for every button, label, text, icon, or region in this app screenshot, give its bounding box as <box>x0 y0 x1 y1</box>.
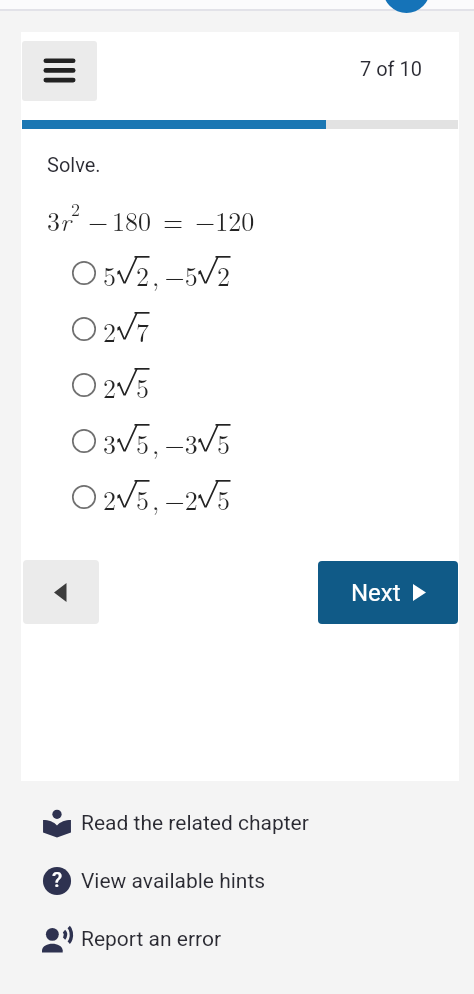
button[interactable]: 3 <box>69 419 369 463</box>
staticText: View available hints <box>81 869 266 894</box>
staticText: 3 <box>47 202 61 239</box>
staticText: 5 <box>217 425 231 462</box>
staticText: , −2 <box>152 481 198 518</box>
staticText: Report an error <box>81 927 222 952</box>
staticText: −120 <box>195 202 255 239</box>
staticText: Solve. <box>47 153 101 176</box>
staticText: , −3 <box>152 425 198 462</box>
staticText: − <box>88 202 109 239</box>
staticText: 5 <box>103 257 117 294</box>
staticText: 5 <box>136 369 150 406</box>
staticText: 2 <box>103 481 117 518</box>
button[interactable]: Read the related chapter <box>0 797 474 849</box>
staticText: r <box>60 202 71 239</box>
staticText: 5 <box>136 481 150 518</box>
button[interactable]: 5 <box>69 251 369 295</box>
button[interactable]: 2 <box>69 363 369 407</box>
button[interactable]: Report an error <box>0 913 474 965</box>
staticText: 5 <box>136 425 150 462</box>
staticText: 2 <box>103 313 117 350</box>
staticText: 2 <box>217 257 231 294</box>
staticText: 7 <box>136 313 150 350</box>
staticText: , −5 <box>152 257 198 294</box>
staticText: 2 <box>103 369 117 406</box>
staticText: Next <box>351 579 401 607</box>
staticText: = <box>163 202 184 239</box>
staticText: Read the related chapter <box>81 811 309 836</box>
staticText: 2 <box>71 196 80 222</box>
button[interactable]: 2 <box>69 307 369 351</box>
staticText: 2 <box>136 257 150 294</box>
staticText: 180 <box>112 202 152 239</box>
button[interactable]: Menu <box>22 41 97 101</box>
staticText: 5 <box>217 481 231 518</box>
button[interactable]: Next <box>318 561 458 624</box>
staticText: 3 <box>103 425 117 462</box>
button[interactable]: 2 <box>69 475 369 519</box>
button[interactable]: ? <box>0 855 474 907</box>
staticText: 7 of 10 <box>360 57 423 80</box>
staticText: ? <box>52 868 63 893</box>
button[interactable]: Previous question <box>23 560 99 624</box>
